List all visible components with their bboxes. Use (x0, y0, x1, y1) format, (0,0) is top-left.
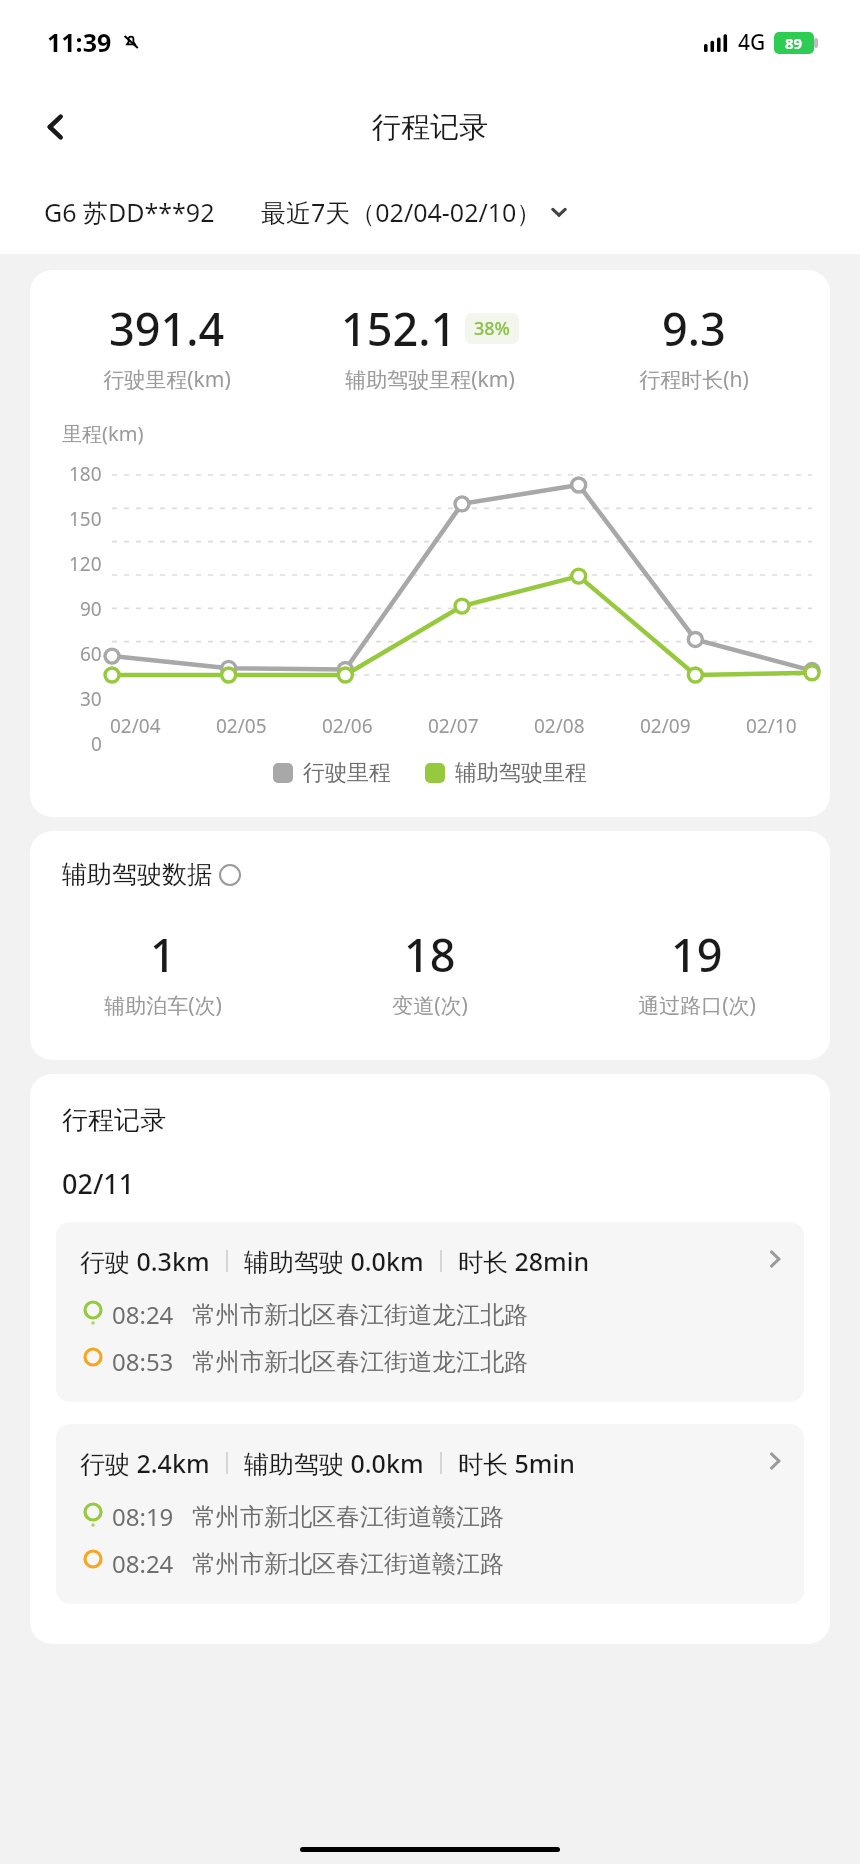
other: Info (219, 864, 241, 886)
staticText: 90 (80, 596, 102, 622)
staticText: 辅助驾驶里程(km) (345, 365, 515, 394)
staticText: 最近7天（02/04-02/10） (261, 195, 542, 229)
staticText: 辅助驾驶里程 (455, 759, 587, 787)
staticText: 里程(km) (62, 420, 144, 447)
staticText: 180 (69, 461, 102, 487)
staticText: 89 (785, 33, 803, 53)
staticText: 0 (91, 731, 102, 753)
staticText: 19 (671, 924, 723, 985)
staticText: 02/04 (110, 713, 161, 739)
staticText: 行驶里程 (303, 759, 391, 787)
staticText: 02/10 (746, 713, 797, 739)
staticText: 常州市新北区春江街道赣江路 (192, 1549, 504, 1579)
staticText: 02/05 (216, 713, 267, 739)
staticText: 18 (404, 924, 456, 985)
staticText: 辅助驾驶数据 (62, 859, 212, 890)
staticText: 行驶 2.4km (80, 1446, 210, 1480)
staticText: 02/06 (322, 713, 373, 739)
staticText: 150 (69, 506, 102, 532)
staticText: 02/08 (534, 713, 585, 739)
staticText: 60 (80, 641, 102, 667)
button[interactable]: 辅助驾驶数据 (62, 859, 241, 890)
staticText: 120 (69, 551, 102, 577)
staticText: 常州市新北区春江街道龙江北路 (192, 1347, 528, 1377)
staticText: 02/11 (62, 1165, 135, 1202)
staticText: 08:24 (112, 1547, 174, 1580)
staticText: 行程时长(h) (639, 365, 749, 394)
staticText: 391.4 (109, 298, 225, 359)
staticText: 通过路口(次) (638, 991, 756, 1020)
staticText: 辅助驾驶 0.0km (244, 1244, 424, 1278)
staticText: 辅助驾驶 0.0km (244, 1446, 424, 1480)
staticText: 行驶 0.3km (80, 1244, 210, 1278)
staticText: 38% (474, 316, 510, 341)
staticText: 30 (80, 686, 102, 712)
staticText: 9.3 (662, 298, 726, 359)
staticText: 4G (738, 28, 766, 57)
button[interactable]: 行驶 2.4km (56, 1424, 804, 1604)
staticText: 152.1 (341, 298, 457, 359)
staticText: 辅助泊车(次) (104, 991, 222, 1020)
staticText: 02/07 (428, 713, 479, 739)
staticText: 行程记录 (372, 109, 488, 146)
staticText: 行驶里程(km) (103, 365, 231, 394)
button[interactable]: 行驶 0.3km (56, 1222, 804, 1402)
staticText: 变道(次) (392, 991, 468, 1020)
staticText: G6 苏DD***92 (44, 195, 215, 229)
button[interactable]: 最近7天（02/04-02/10） (261, 195, 570, 229)
other: Details (764, 1450, 786, 1472)
staticText: 常州市新北区春江街道龙江北路 (192, 1300, 528, 1330)
staticText: 时长 28min (458, 1244, 590, 1278)
button[interactable]: Back (30, 101, 82, 153)
button[interactable]: G6 苏DD***92 (44, 195, 215, 229)
staticText: 02/09 (640, 713, 691, 739)
staticText: 时长 5min (458, 1446, 575, 1480)
staticText: 08:19 (112, 1500, 174, 1533)
staticText: 行程记录 (62, 1104, 166, 1137)
staticText: 1 (150, 924, 176, 985)
staticText: 常州市新北区春江街道赣江路 (192, 1502, 504, 1532)
staticText: 08:24 (112, 1298, 174, 1331)
staticText: 08:53 (112, 1345, 174, 1378)
staticText: 11:39 (47, 25, 112, 59)
other: Details (764, 1248, 786, 1270)
